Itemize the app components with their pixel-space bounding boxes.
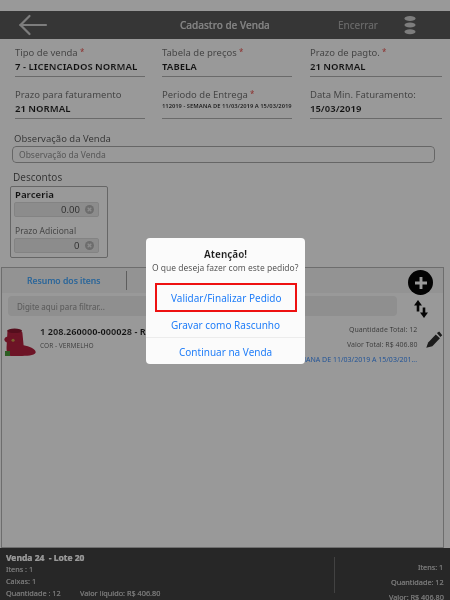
button[interactable]: Validar/Finalizar Pedido bbox=[155, 283, 297, 312]
staticText: Continuar na Venda bbox=[179, 345, 273, 359]
staticText: Prazo de pagto. bbox=[310, 46, 380, 59]
staticText: Itens: 1 bbox=[418, 562, 444, 572]
staticText: Atenção! bbox=[204, 248, 248, 261]
staticText: Quantidade Total: 12 bbox=[349, 325, 418, 335]
staticText: Gravar como Rascunho bbox=[171, 318, 281, 332]
staticText: Caixas: 1 bbox=[6, 576, 37, 586]
staticText: Validar/Finalizar Pedido bbox=[171, 291, 282, 305]
button[interactable]: Encerrar bbox=[330, 11, 386, 39]
staticText: Periodo de Entrega bbox=[162, 88, 248, 101]
staticText: * bbox=[239, 46, 244, 57]
button[interactable]: More options bbox=[396, 11, 424, 39]
staticText: 112019 - SEMANA DE 11/03/2019 A 15/03/20… bbox=[162, 102, 292, 110]
staticText: Digite aqui para filtrar... bbox=[17, 301, 105, 312]
staticText: 1 208.260000-000028 - REF 2000 - BOTA bbox=[40, 325, 212, 338]
button[interactable]: Tipo de venda bbox=[15, 46, 145, 82]
button[interactable]: Add item bbox=[408, 270, 433, 295]
staticText: 21 NORMAL bbox=[310, 60, 366, 73]
staticText: Descontos bbox=[13, 170, 63, 184]
staticText: * bbox=[80, 46, 85, 57]
staticText: Tabela de preços bbox=[162, 46, 237, 59]
staticText: Quantidade: 12 bbox=[391, 577, 444, 587]
button[interactable]: Edit bbox=[424, 331, 443, 350]
staticText: 21 NORMAL bbox=[15, 102, 71, 115]
staticText: Parceria bbox=[15, 188, 54, 201]
staticText: * bbox=[382, 46, 387, 57]
button[interactable]: 1 208.260000-000028 - REF 2000 - BOTA bbox=[0, 320, 450, 362]
staticText: TABELA bbox=[162, 60, 197, 73]
staticText: 0.00 bbox=[61, 203, 80, 216]
staticText: Observação da Venda bbox=[14, 132, 111, 145]
button[interactable]: Sort bbox=[412, 298, 432, 320]
button[interactable]: Tabela de preços bbox=[162, 46, 292, 82]
button[interactable]: Gravar como Rascunho bbox=[146, 311, 305, 338]
staticText: 112019 - SEMANA DE 11/03/2019 A 15/03/20… bbox=[262, 355, 418, 365]
button[interactable]: Observação da Venda bbox=[12, 146, 435, 163]
staticText: Prazo Adicional bbox=[15, 225, 77, 237]
button[interactable]: 0 bbox=[14, 238, 99, 253]
staticText: * bbox=[250, 88, 255, 99]
staticText: Valor líquido: R$ 406.80 bbox=[80, 588, 161, 598]
staticText: Quantidade : 12 bbox=[6, 588, 61, 598]
staticText: O que deseja fazer com este pedido? bbox=[152, 262, 299, 274]
button[interactable]: Prazo para faturamento bbox=[15, 88, 145, 124]
button[interactable]: Prazo de pagto. bbox=[310, 46, 442, 82]
button[interactable]: Back bbox=[10, 11, 56, 39]
staticText: 15/03/2019 bbox=[310, 102, 362, 115]
staticText: Tipo de venda bbox=[15, 46, 78, 59]
staticText: 0 bbox=[74, 239, 80, 252]
staticText: Itens : 1 bbox=[6, 564, 34, 574]
staticText: Prazo para faturamento bbox=[15, 88, 122, 101]
staticText: 7 - LICENCIADOS NORMAL bbox=[15, 60, 138, 73]
staticText: Encerrar bbox=[338, 18, 378, 32]
staticText: Valor Total: R$ 406.80 bbox=[347, 340, 418, 350]
button[interactable]: Resumo dos itens bbox=[2, 268, 126, 293]
button[interactable]: Digite aqui para filtrar... bbox=[8, 296, 397, 316]
staticText: Cadastro de Venda bbox=[180, 18, 270, 32]
staticText: Venda 24 - Lote 20 bbox=[6, 552, 85, 564]
staticText: Observação da Venda bbox=[19, 149, 106, 161]
button[interactable]: Continuar na Venda bbox=[146, 339, 305, 364]
button[interactable]: 0.00 bbox=[14, 202, 99, 217]
staticText: Data Min. Faturamento: bbox=[310, 88, 416, 101]
staticText: COR - VERMELHO bbox=[40, 341, 94, 350]
button[interactable]: Periodo de Entrega bbox=[162, 88, 292, 124]
staticText: Valor: R$ 406.80 bbox=[389, 592, 444, 600]
staticText: Resumo dos itens bbox=[27, 275, 101, 287]
button[interactable]: Data Min. Faturamento: bbox=[310, 88, 442, 124]
